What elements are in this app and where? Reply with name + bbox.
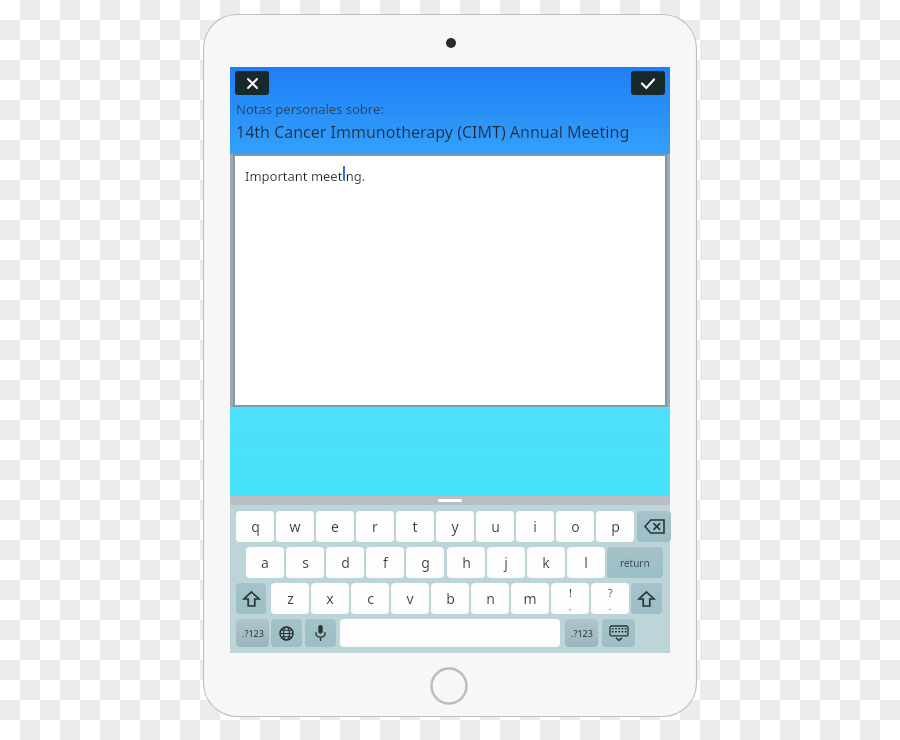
staticText: y [451, 517, 459, 536]
staticText: v [406, 589, 414, 608]
button[interactable]: Dictate [305, 619, 336, 647]
button[interactable]: Close [235, 71, 269, 95]
staticText: .?123 [242, 627, 264, 639]
button[interactable]: g [406, 547, 444, 578]
button[interactable]: q [236, 511, 274, 542]
staticText: r [372, 517, 378, 536]
button[interactable]: f [366, 547, 404, 578]
staticText: t [412, 517, 418, 536]
staticText: . [609, 600, 612, 612]
button[interactable]: d [326, 547, 364, 578]
button[interactable]: o [556, 511, 594, 542]
button[interactable]: s [286, 547, 324, 578]
staticText: o [571, 517, 580, 536]
button[interactable]: .?123 [236, 619, 269, 647]
button[interactable]: Important meeting. [235, 156, 665, 405]
staticText: .?123 [571, 627, 593, 639]
staticText: Important meeting. [245, 167, 366, 185]
staticText: a [261, 553, 269, 572]
staticText: Notas personales sobre: [236, 100, 384, 118]
button[interactable]: Hide keyboard [602, 619, 635, 647]
button[interactable]: n [471, 583, 509, 614]
button[interactable]: k [527, 547, 565, 578]
staticText: , [569, 600, 572, 612]
button[interactable]: p [596, 511, 634, 542]
button[interactable]: i [516, 511, 554, 542]
button[interactable]: Change keyboard [271, 619, 302, 647]
staticText: l [584, 553, 588, 572]
staticText: j [504, 553, 508, 572]
button[interactable]: c [351, 583, 389, 614]
button[interactable]: t [396, 511, 434, 542]
staticText: 14th Cancer Immunotherapy (CIMT) Annual … [236, 121, 630, 143]
button[interactable]: .?123 [565, 619, 598, 647]
staticText: e [331, 517, 339, 536]
staticText: return [620, 556, 650, 570]
staticText: c [367, 589, 374, 608]
button[interactable]: w [276, 511, 314, 542]
button[interactable]: y [436, 511, 474, 542]
button[interactable]: v [391, 583, 429, 614]
staticText: p [611, 517, 620, 536]
staticText: w [289, 517, 301, 536]
button[interactable]: m [511, 583, 549, 614]
button[interactable]: x [311, 583, 349, 614]
staticText: z [287, 589, 294, 608]
staticText: f [383, 553, 388, 572]
staticText: n [486, 589, 495, 608]
button[interactable]: return [607, 547, 663, 578]
button[interactable]: Backspace [637, 511, 671, 542]
staticText: i [533, 517, 537, 536]
button[interactable]: r [356, 511, 394, 542]
button[interactable]: j [487, 547, 525, 578]
button[interactable]: ? [591, 583, 629, 614]
staticText: u [491, 517, 500, 536]
staticText: m [523, 589, 537, 608]
button[interactable]: a [246, 547, 284, 578]
button[interactable]: Shift [236, 583, 266, 614]
staticText: q [251, 517, 260, 536]
button[interactable]: z [271, 583, 309, 614]
button[interactable]: l [567, 547, 605, 578]
button[interactable]: b [431, 583, 469, 614]
staticText: ! [569, 585, 572, 600]
staticText: s [302, 553, 309, 572]
button[interactable]: h [447, 547, 485, 578]
staticText: b [446, 589, 455, 608]
staticText: g [421, 553, 430, 572]
button[interactable]: u [476, 511, 514, 542]
staticText: h [462, 553, 471, 572]
staticText: k [542, 553, 550, 572]
button[interactable]: e [316, 511, 354, 542]
staticText: x [326, 589, 334, 608]
button[interactable]: Done [631, 71, 665, 95]
staticText: d [341, 553, 350, 572]
staticText: ? [608, 585, 613, 600]
button[interactable]: Shift [631, 583, 662, 614]
button[interactable]: ! [551, 583, 589, 614]
